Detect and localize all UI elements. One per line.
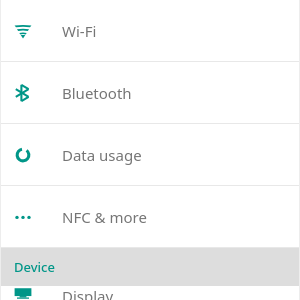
staticText: Wi-Fi: [62, 21, 97, 41]
other: NFC and more: [13, 207, 33, 227]
staticText: Bluetooth: [62, 83, 132, 103]
staticText: Device: [14, 258, 55, 276]
button[interactable]: Display: [0, 286, 300, 300]
button[interactable]: Bluetooth: [0, 62, 300, 123]
other: Wi-Fi: [13, 21, 33, 41]
staticText: Data usage: [62, 145, 142, 165]
staticText: Display: [62, 286, 114, 300]
button[interactable]: Wi-Fi: [0, 0, 300, 61]
other: Data usage: [13, 145, 33, 165]
other: Bluetooth: [13, 83, 33, 103]
other: Display: [13, 286, 33, 300]
staticText: NFC & more: [62, 207, 147, 227]
button[interactable]: Data usage: [0, 124, 300, 185]
button[interactable]: NFC and more: [0, 186, 300, 247]
